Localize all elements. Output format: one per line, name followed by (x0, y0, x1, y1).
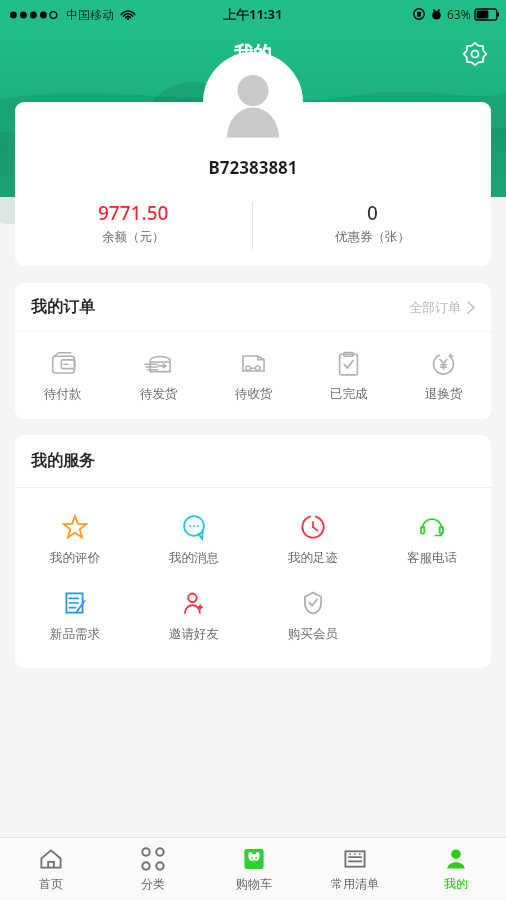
button[interactable]: 我的订单 (15, 283, 491, 331)
button[interactable]: 待发货 (111, 348, 206, 404)
button[interactable]: 客服电话 (372, 514, 491, 566)
button[interactable]: 退换货 (396, 348, 491, 404)
staticText: 中国移动 (66, 7, 114, 22)
staticText: 退换货 (425, 386, 463, 402)
staticText: 上午11:31 (223, 5, 283, 23)
button[interactable]: 我的消息 (134, 514, 253, 566)
button[interactable]: 分类 (102, 838, 203, 900)
staticText: 我的服务 (31, 451, 95, 471)
staticText: 9771.50 (98, 200, 169, 226)
button[interactable]: 购买会员 (253, 590, 372, 642)
staticText: 常用清单 (331, 876, 379, 891)
button[interactable]: 我的 (405, 838, 506, 900)
button[interactable]: 常用清单 (304, 838, 405, 900)
staticText: 购物车 (236, 876, 272, 891)
button[interactable]: Settings (458, 37, 492, 71)
staticText: 全部订单 (409, 299, 461, 315)
button[interactable]: 购物车 (203, 838, 304, 900)
staticText: B72383881 (15, 156, 491, 179)
staticText: 我的消息 (169, 550, 219, 566)
button[interactable]: 邀请好友 (134, 590, 253, 642)
staticText: 优惠券（张） (335, 229, 410, 245)
staticText: 购买会员 (288, 626, 338, 642)
button[interactable]: 我的足迹 (253, 514, 372, 566)
button[interactable]: 9771.50 (15, 200, 252, 252)
button[interactable]: B72383881 (15, 102, 491, 266)
staticText: 63% (447, 6, 471, 22)
staticText: 我的足迹 (288, 550, 338, 566)
staticText: 我的订单 (31, 297, 95, 317)
button[interactable]: 新品需求 (15, 590, 134, 642)
staticText: 新品需求 (50, 626, 100, 642)
staticText: 客服电话 (407, 550, 457, 566)
button[interactable]: 首页 (0, 838, 102, 900)
staticText: 邀请好友 (169, 626, 219, 642)
staticText: 待发货 (140, 386, 178, 402)
button[interactable]: 我的评价 (15, 514, 134, 566)
staticText: 0 (367, 200, 378, 226)
staticText: 已完成 (330, 386, 368, 402)
staticText: 首页 (39, 876, 63, 891)
staticText: 分类 (141, 876, 165, 891)
staticText: 我的 (234, 42, 272, 66)
staticText: 我的评价 (50, 550, 100, 566)
button[interactable]: 0 (253, 200, 491, 252)
staticText: 我的 (444, 876, 468, 891)
staticText: 待付款 (44, 386, 82, 402)
staticText: 余额（元） (102, 229, 165, 245)
button[interactable]: 待收货 (206, 348, 301, 404)
button[interactable]: 待付款 (15, 348, 111, 404)
button[interactable]: 已完成 (301, 348, 396, 404)
staticText: 待收货 (235, 386, 273, 402)
